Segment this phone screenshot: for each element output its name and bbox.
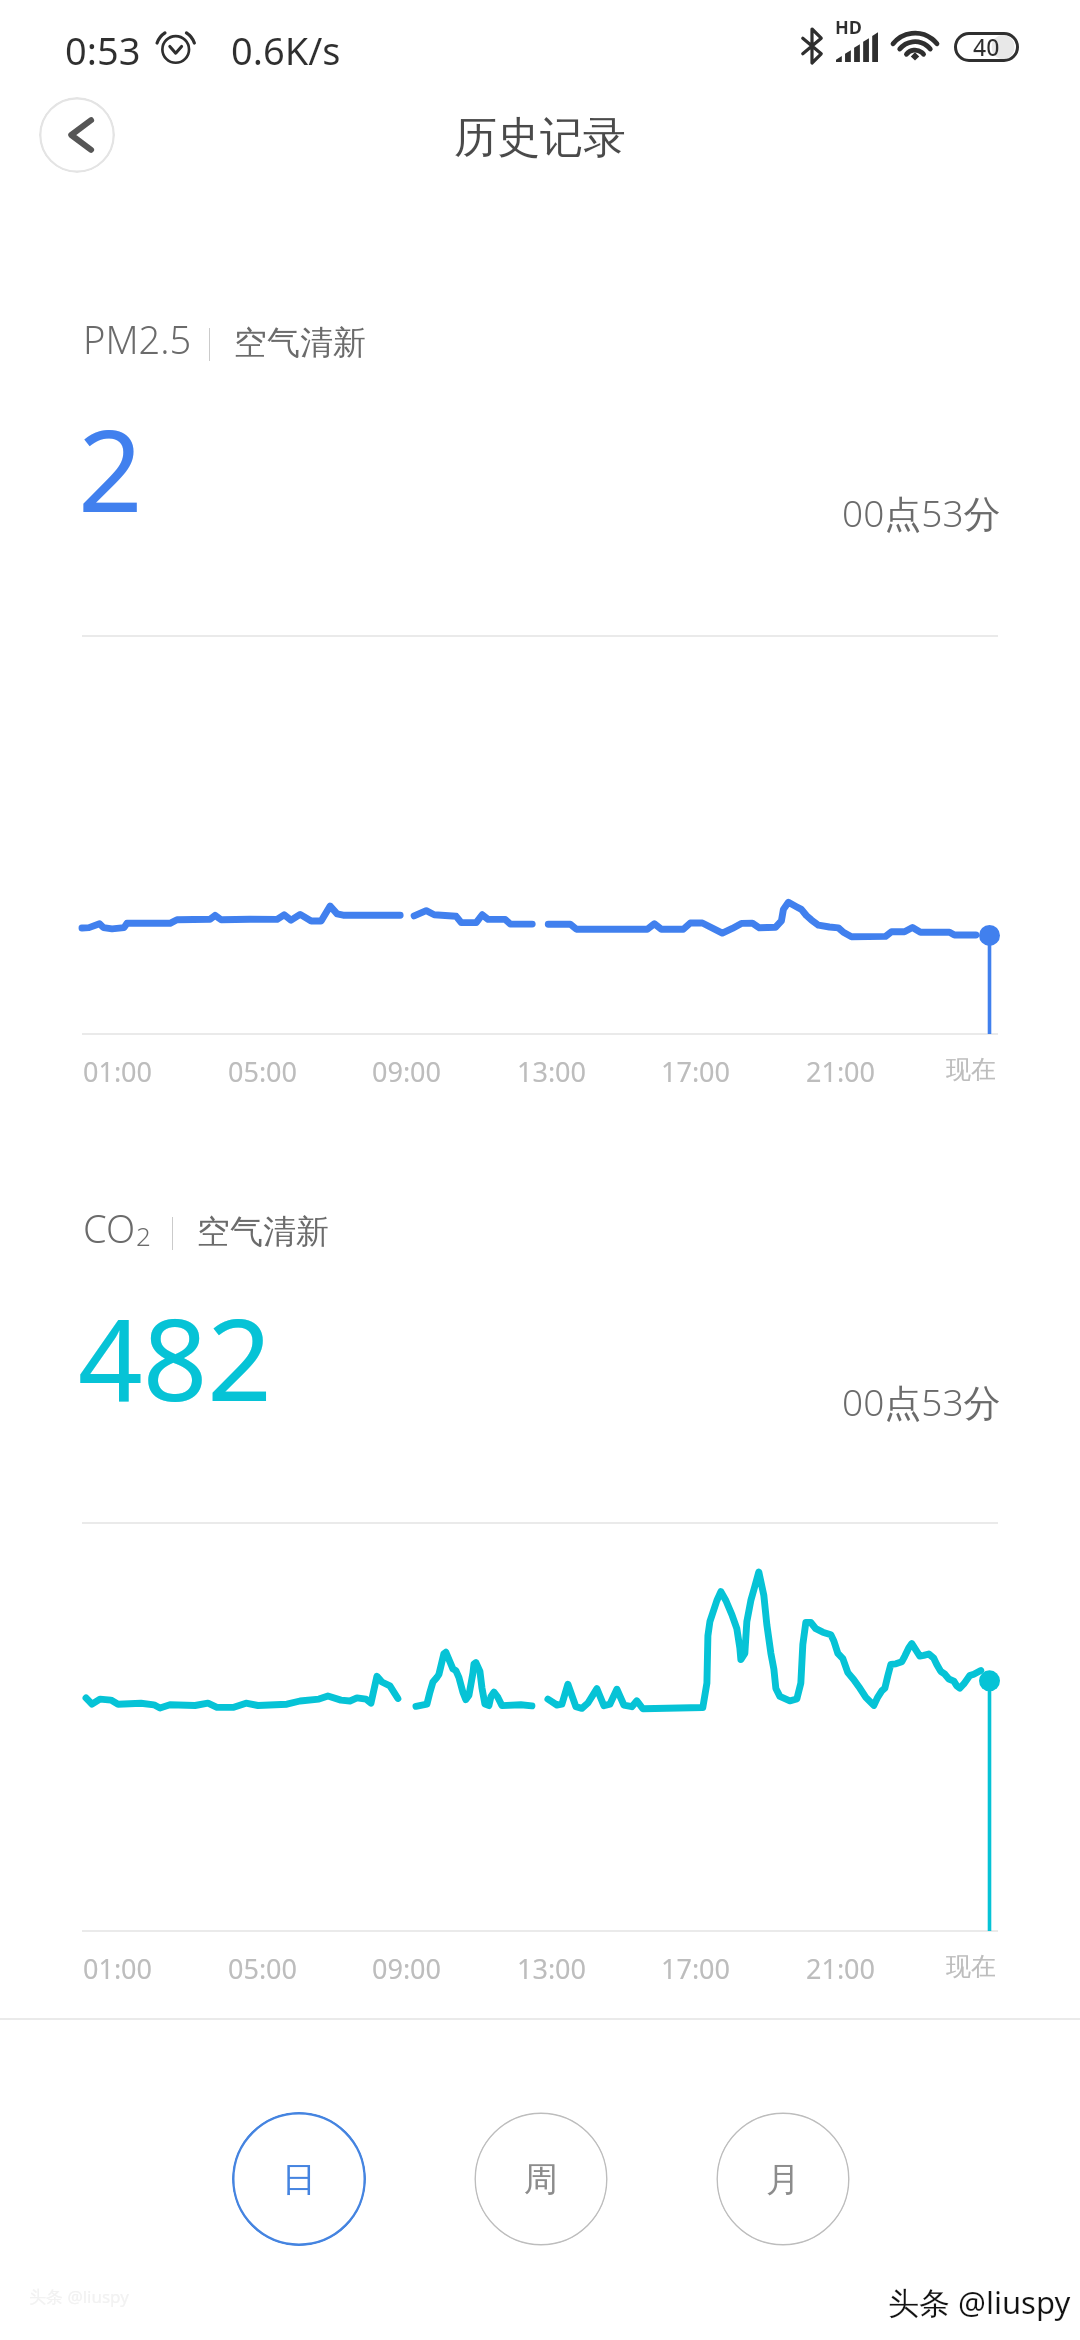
staticText: 空气清新 — [234, 322, 366, 364]
staticText: 现在 — [946, 1054, 996, 1085]
staticText: HD — [835, 15, 862, 40]
staticText: 13:00 — [517, 1950, 587, 1987]
staticText: 01:00 — [83, 1950, 153, 1987]
staticText: 头条 @liuspy — [29, 2285, 129, 2308]
button[interactable]: CO2 history chart — [82, 1523, 990, 1931]
staticText: 13:00 — [517, 1053, 587, 1090]
staticText: 01:00 — [83, 1053, 153, 1090]
button[interactable]: 周 — [474, 2112, 608, 2246]
button[interactable]: PM2.5 history chart — [82, 636, 990, 1034]
staticText: 日 — [282, 2158, 316, 2201]
staticText: 2 — [136, 1218, 151, 1253]
button[interactable]: Back — [39, 97, 115, 173]
staticText: 40 — [973, 31, 1000, 62]
staticText: 09:00 — [372, 1950, 442, 1987]
staticText: 历史记录 — [454, 111, 626, 165]
staticText: 空气清新 — [197, 1211, 329, 1253]
staticText: 2 — [78, 391, 143, 545]
staticText: 21:00 — [806, 1053, 876, 1090]
staticText: 0:53 — [65, 24, 141, 76]
staticText: 05:00 — [228, 1950, 298, 1987]
staticText: PM2.5 — [83, 313, 192, 365]
staticText: 482 — [78, 1280, 272, 1434]
staticText: 17:00 — [661, 1950, 731, 1987]
staticText: 09:00 — [372, 1053, 442, 1090]
staticText: 月 — [766, 2158, 800, 2201]
staticText: 现在 — [946, 1951, 996, 1982]
staticText: 0.6K/s — [231, 24, 341, 76]
staticText: 00点53分 — [842, 1376, 1001, 1427]
staticText: 17:00 — [661, 1053, 731, 1090]
staticText: 头条 @liuspy — [888, 2281, 1071, 2323]
staticText: 05:00 — [228, 1053, 298, 1090]
staticText: 周 — [524, 2158, 558, 2201]
staticText: CO — [83, 1202, 136, 1254]
staticText: 21:00 — [806, 1950, 876, 1987]
staticText: 00点53分 — [842, 487, 1001, 538]
button[interactable]: 日 — [232, 2112, 366, 2246]
button[interactable]: 月 — [716, 2112, 850, 2246]
